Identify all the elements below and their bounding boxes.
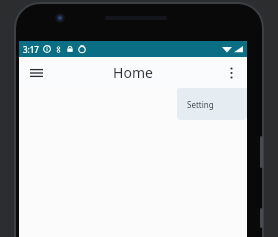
button[interactable]: More options <box>220 62 242 84</box>
button[interactable]: Setting <box>177 88 247 120</box>
staticText: Home <box>113 63 153 82</box>
staticText: Setting <box>187 99 214 110</box>
button[interactable]: Open navigation menu <box>25 62 47 84</box>
staticText: 3:17 <box>23 44 39 55</box>
